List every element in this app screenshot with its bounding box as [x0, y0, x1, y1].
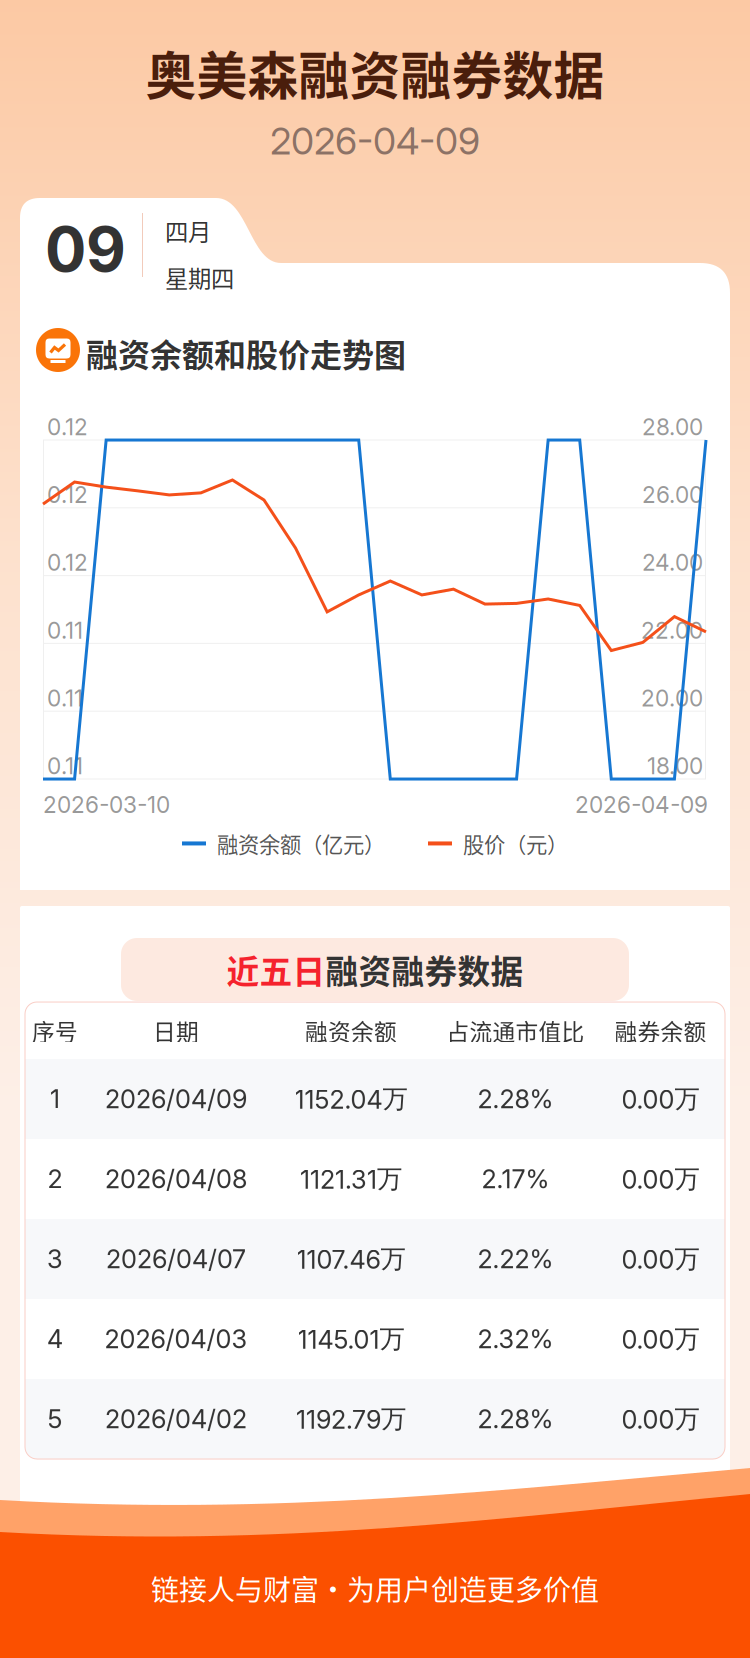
staticText: 26.00 [642, 481, 703, 508]
staticText: 融资融券数据 [325, 946, 523, 993]
staticText: 0.00万 [621, 1403, 699, 1435]
staticText: 四月 [165, 214, 211, 248]
staticText: 2026-04-09 [575, 791, 708, 818]
staticText: 融券余额 [614, 1014, 706, 1047]
staticText: 1107.46万 [296, 1243, 405, 1275]
staticText: 2026/04/08 [105, 1164, 247, 1194]
staticText: 奥美森融资融券数据 [145, 36, 604, 109]
staticText: 0.00万 [621, 1163, 699, 1195]
staticText: 链接人与财富·为用户创造更多价值 [151, 1568, 599, 1608]
staticText: 5 [47, 1404, 62, 1434]
staticText: 2 [47, 1164, 62, 1194]
staticText: 20.00 [641, 684, 703, 712]
staticText: 2.17% [481, 1164, 549, 1194]
staticText: 2.22% [477, 1244, 553, 1274]
staticText: 09 [45, 212, 126, 286]
staticText: 2.32% [477, 1324, 553, 1354]
staticText: 0.11 [47, 752, 83, 780]
staticText: 2026/04/07 [106, 1244, 246, 1274]
staticText: 序号 [32, 1014, 78, 1047]
staticText: 2026-03-10 [43, 791, 170, 818]
staticText: 0.12 [47, 481, 88, 508]
staticText: 24.00 [642, 549, 703, 576]
staticText: 0.11 [47, 684, 83, 712]
staticText: 近五日 [226, 946, 325, 993]
staticText: 2.28% [477, 1084, 553, 1114]
staticText: 0.00万 [621, 1323, 699, 1355]
staticText: 3 [47, 1244, 63, 1274]
staticText: 0.11 [47, 617, 83, 644]
staticText: 0.00万 [621, 1083, 699, 1115]
staticText: 0.12 [47, 413, 88, 441]
staticText: 2026/04/09 [105, 1084, 247, 1114]
staticText: 1152.04万 [294, 1083, 407, 1115]
staticText: 2.28% [477, 1404, 553, 1434]
staticText: 18.00 [647, 752, 703, 780]
staticText: 0.00万 [621, 1243, 699, 1275]
staticText: 1 [50, 1084, 60, 1114]
staticText: 星期四 [165, 261, 234, 295]
staticText: 股价（元） [463, 828, 568, 859]
staticText: 融资余额 [305, 1014, 397, 1047]
staticText: 2026/04/02 [105, 1404, 247, 1434]
staticText: 1192.79万 [296, 1403, 406, 1435]
staticText: 1145.01万 [297, 1323, 404, 1355]
staticText: 日期 [153, 1014, 199, 1047]
staticText: 2026-04-09 [270, 118, 480, 164]
staticText: 1121.31万 [300, 1163, 402, 1195]
staticText: 占流通市值比 [446, 1014, 584, 1047]
staticText: 28.00 [642, 413, 703, 441]
staticText: 融资余额和股价走势图 [86, 330, 406, 376]
staticText: 融资余额（亿元） [217, 828, 385, 859]
staticText: 2026/04/03 [104, 1324, 247, 1354]
staticText: 22.00 [641, 617, 703, 644]
staticText: 0.12 [47, 549, 88, 576]
staticText: 4 [47, 1324, 63, 1354]
